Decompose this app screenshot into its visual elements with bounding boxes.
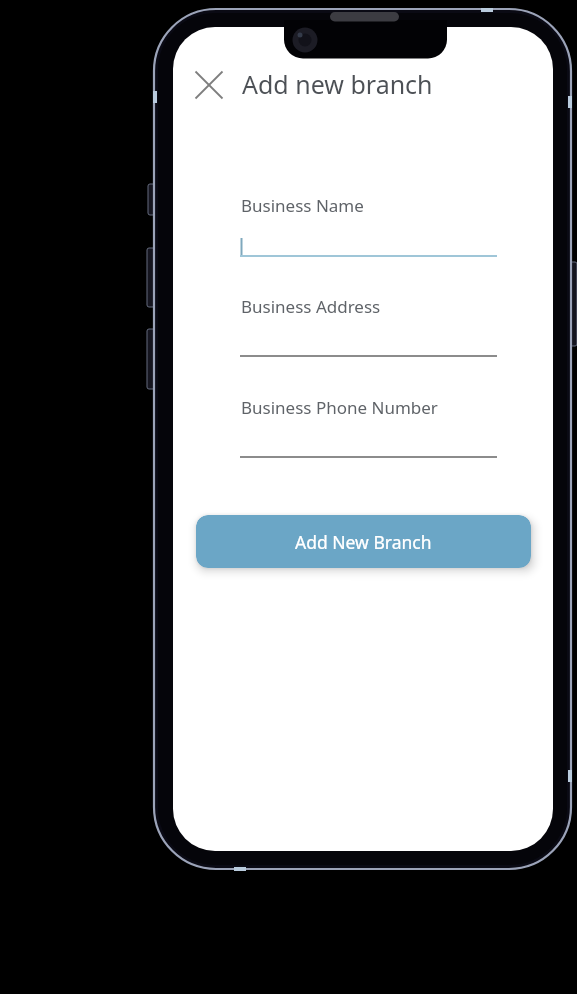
button[interactable] [240,326,497,358]
staticText: Business Address [241,295,381,318]
staticText: Add new branch [242,67,433,101]
button[interactable] [240,226,497,258]
button[interactable]: Add New Branch [196,515,531,568]
button[interactable] [240,427,497,459]
button[interactable] [191,67,227,103]
staticText: Add New Branch [295,530,432,554]
staticText: Business Name [241,194,364,217]
staticText: Business Phone Number [241,396,438,419]
